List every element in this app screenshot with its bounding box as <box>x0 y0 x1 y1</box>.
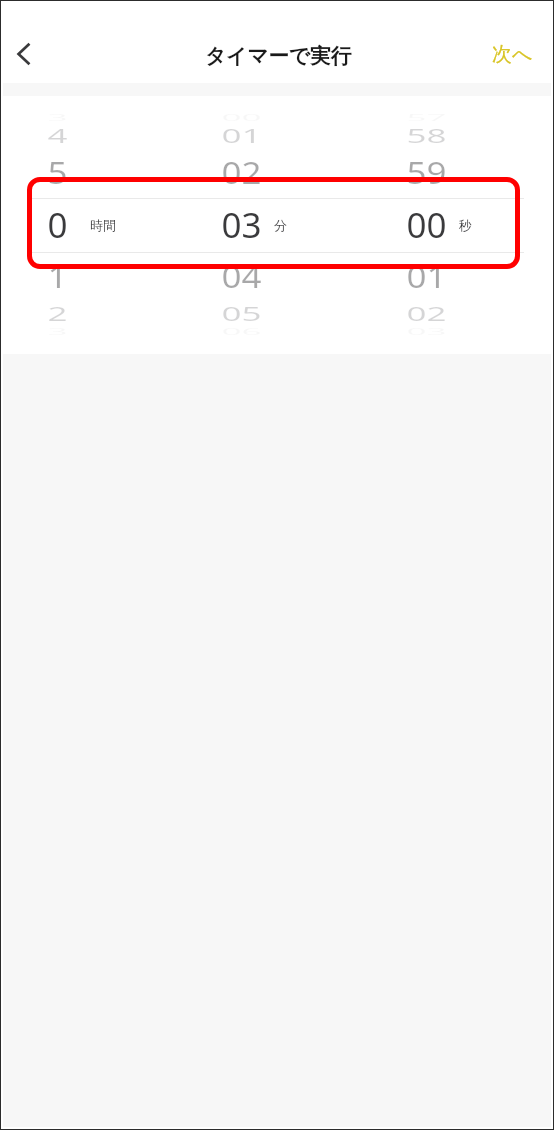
staticText: 次へ <box>492 42 533 67</box>
staticText: 秒 <box>459 217 472 233</box>
staticText: 02 <box>406 301 447 327</box>
staticText: 04 <box>221 256 262 298</box>
button[interactable]: 次へ <box>471 26 554 83</box>
staticText: 1 <box>47 256 68 298</box>
button[interactable]: Back <box>0 30 48 78</box>
staticText: 4 <box>47 123 68 149</box>
staticText: タイマーで実行 <box>205 43 352 69</box>
staticText: 分 <box>274 217 287 233</box>
staticText: 01 <box>221 123 262 149</box>
staticText: 01 <box>406 256 447 298</box>
button[interactable]: 時間 <box>0 96 184 354</box>
button[interactable]: 秒 <box>369 96 554 354</box>
staticText: 02 <box>221 152 262 194</box>
staticText: 5 <box>47 152 68 194</box>
staticText: 59 <box>406 152 447 194</box>
button[interactable]: 分 <box>184 96 369 354</box>
staticText: 時間 <box>90 217 116 233</box>
staticText: 05 <box>221 301 262 327</box>
staticText: 03 <box>221 201 262 249</box>
staticText: 00 <box>406 201 447 249</box>
staticText: 2 <box>47 301 68 327</box>
staticText: 0 <box>47 201 68 249</box>
staticText: 58 <box>406 123 447 149</box>
